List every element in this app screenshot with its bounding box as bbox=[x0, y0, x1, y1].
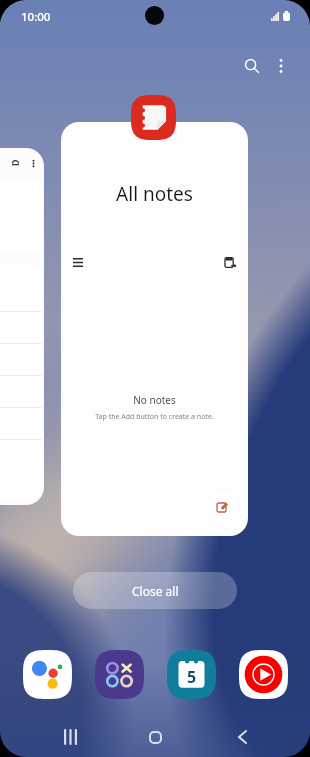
button[interactable]: Samsung Notes bbox=[131, 95, 176, 140]
button[interactable]: YouTube Music bbox=[239, 650, 288, 699]
button[interactable]: More options bbox=[265, 50, 297, 82]
button[interactable]: Create note bbox=[207, 491, 237, 521]
button[interactable]: Back bbox=[222, 723, 262, 751]
staticText: Close all bbox=[132, 583, 179, 599]
button[interactable]: Close all bbox=[73, 572, 237, 609]
button[interactable]: Add folder bbox=[218, 250, 242, 274]
staticText: No notes bbox=[61, 393, 248, 407]
button[interactable]: Home bbox=[135, 723, 175, 751]
staticText: Tap the Add button to create a note. bbox=[61, 412, 248, 422]
button[interactable]: All notes bbox=[61, 122, 248, 536]
button[interactable]: Google Assistant bbox=[23, 650, 72, 699]
button[interactable]: Recents bbox=[50, 723, 90, 751]
button[interactable]: View options bbox=[66, 250, 90, 274]
button[interactable]: Calendar bbox=[167, 650, 216, 699]
button[interactable]: Game Launcher bbox=[95, 650, 144, 699]
staticText: 5 bbox=[187, 666, 197, 688]
staticText: All notes bbox=[61, 181, 248, 207]
button[interactable]: Search bbox=[236, 50, 268, 82]
button[interactable]: ion bbox=[0, 148, 44, 505]
staticText: 10:00 bbox=[21, 9, 51, 25]
